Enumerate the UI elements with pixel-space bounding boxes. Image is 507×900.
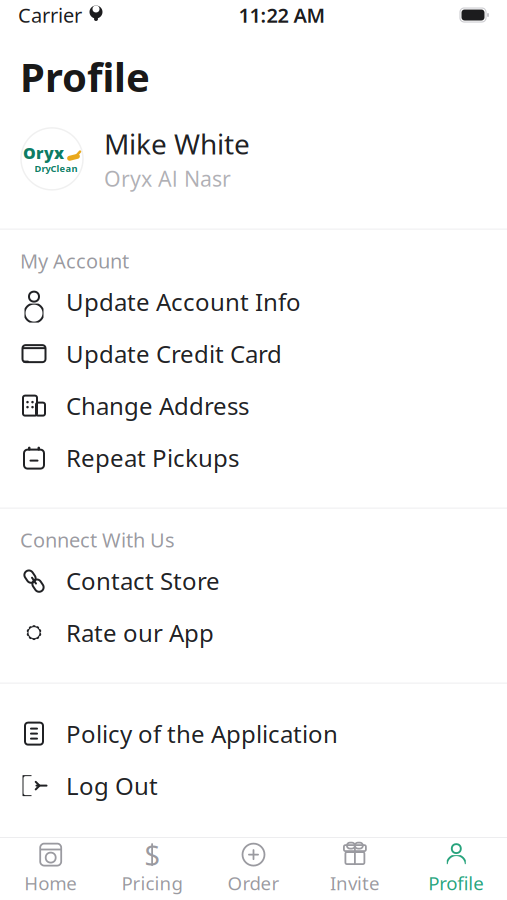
- staticText: My Account: [20, 247, 129, 274]
- staticText: 11:22 AM: [238, 2, 325, 28]
- staticText: Log Out: [66, 770, 158, 802]
- staticText: Profile: [20, 50, 150, 103]
- button[interactable]: S: [101, 838, 203, 900]
- staticText: S: [145, 836, 160, 873]
- button[interactable]: Repeat Pickups: [0, 432, 507, 484]
- staticText: Oryx: [23, 142, 64, 163]
- button[interactable]: Order: [203, 838, 304, 900]
- staticText: Oryx Al Nasr: [104, 164, 231, 193]
- button[interactable]: Update Account Info: [0, 276, 507, 328]
- staticText: Pricing: [122, 871, 183, 895]
- staticText: Carrier: [18, 2, 82, 28]
- button[interactable]: Oryx: [0, 103, 507, 229]
- staticText: Policy of the Application: [66, 718, 338, 750]
- button[interactable]: Invite: [304, 838, 406, 900]
- staticText: Update Credit Card: [66, 338, 282, 370]
- staticText: Invite: [330, 871, 380, 895]
- staticText: Profile: [428, 871, 484, 895]
- button[interactable]: Contact Store: [0, 555, 507, 607]
- staticText: Order: [227, 871, 279, 895]
- staticText: Change Address: [66, 390, 249, 422]
- button[interactable]: Rate our App: [0, 607, 507, 659]
- button[interactable]: Update Credit Card: [0, 328, 507, 380]
- staticText: Home: [24, 871, 77, 895]
- button[interactable]: Policy of the Application: [0, 708, 507, 760]
- staticText: Contact Store: [66, 565, 220, 597]
- button[interactable]: Change Address: [0, 380, 507, 432]
- staticText: Update Account Info: [66, 286, 301, 318]
- staticText: DryClean: [34, 162, 77, 175]
- staticText: Mike White: [104, 125, 250, 162]
- staticText: Rate our App: [66, 617, 214, 649]
- button[interactable]: Profile: [406, 838, 507, 900]
- button[interactable]: Home: [0, 838, 101, 900]
- button[interactable]: Log Out: [0, 760, 507, 812]
- staticText: Repeat Pickups: [66, 442, 239, 474]
- staticText: Connect With Us: [20, 526, 175, 553]
